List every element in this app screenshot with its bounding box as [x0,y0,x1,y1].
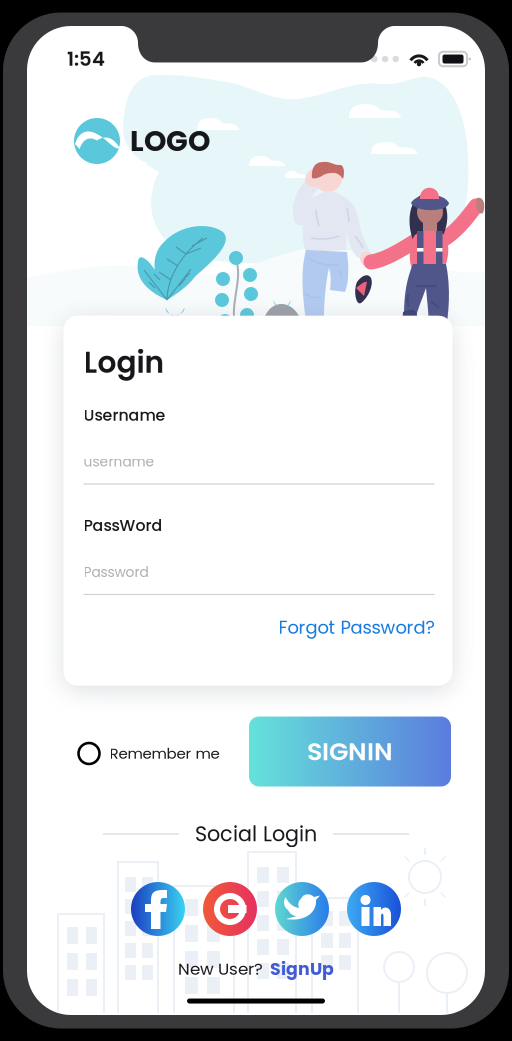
staticText: LOGO [130,121,210,161]
button[interactable]: SIGNIN [249,716,451,786]
button[interactable]: Forgot Password? [83,615,434,640]
staticText: Forgot Password? [278,615,434,640]
staticText: Social Login [195,819,317,848]
staticText: Username [83,404,165,426]
button[interactable]: Twitter [275,882,329,936]
staticText: Login [83,342,164,383]
staticText: SignUp [270,957,334,981]
staticText: SIGNIN [307,734,393,769]
staticText: PassWord [83,515,162,537]
staticText: New User? [178,957,263,981]
button[interactable]: Remember me [78,743,219,764]
staticText: Remember me [109,743,219,764]
button[interactable]: LinkedIn [347,882,401,936]
button[interactable]: Google [203,882,257,936]
staticText: 1:54 [67,45,105,73]
button[interactable]: SignUp [270,957,334,981]
staticText: username [83,452,154,471]
button[interactable]: Facebook [131,882,185,936]
staticText: Password [83,563,148,582]
